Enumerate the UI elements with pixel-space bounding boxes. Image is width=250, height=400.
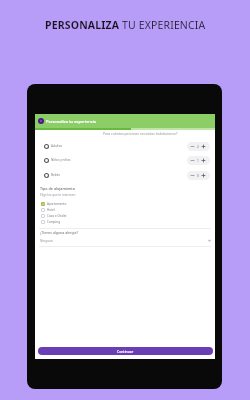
button[interactable]: Bebés <box>35 170 215 180</box>
button[interactable]: Adultos <box>35 141 215 151</box>
button[interactable]: Ninguna <box>40 237 211 244</box>
button[interactable]: Continuar <box>38 347 213 355</box>
staticText: Niños y niñas <box>51 158 71 162</box>
button[interactable]: Hotel <box>41 207 215 213</box>
button[interactable]: Apartamento <box>41 201 215 207</box>
staticText: ¿Tienes alguna alergia? <box>40 230 78 235</box>
other: Increase <box>202 174 205 177</box>
staticText: Personaliza tu experiencia <box>46 119 97 124</box>
staticText: Camping <box>47 220 61 224</box>
staticText: Para cuántas personas necesitas habitaci… <box>103 131 178 136</box>
staticText: PERSONALIZA TU EXPERIENCIA <box>45 18 206 32</box>
other: Decrease <box>191 174 194 177</box>
button[interactable]: Casa o Chalet <box>41 213 215 219</box>
staticText: 2 <box>197 145 199 149</box>
staticText: Elige los que te interesen <box>40 193 76 197</box>
other: Decrease <box>191 159 194 162</box>
button[interactable]: Camping <box>41 219 215 225</box>
other: Decrease <box>191 145 194 148</box>
staticText: Casa o Chalet <box>47 214 67 218</box>
staticText: Tipo de alojamiento <box>40 186 75 191</box>
staticText: 1 <box>197 159 199 163</box>
other: Increase <box>202 159 205 162</box>
other: Expand <box>208 239 211 242</box>
button[interactable]: Niños y niñas <box>35 155 215 165</box>
staticText: Hotel <box>47 208 55 212</box>
staticText: Ninguna <box>40 239 53 243</box>
staticText: Adultos <box>51 144 63 148</box>
staticText: Continuar <box>117 349 134 354</box>
staticText: 0 <box>197 174 199 178</box>
other: Increase <box>202 145 205 148</box>
staticText: Apartamento <box>47 202 67 206</box>
staticText: Bebés <box>51 173 60 177</box>
